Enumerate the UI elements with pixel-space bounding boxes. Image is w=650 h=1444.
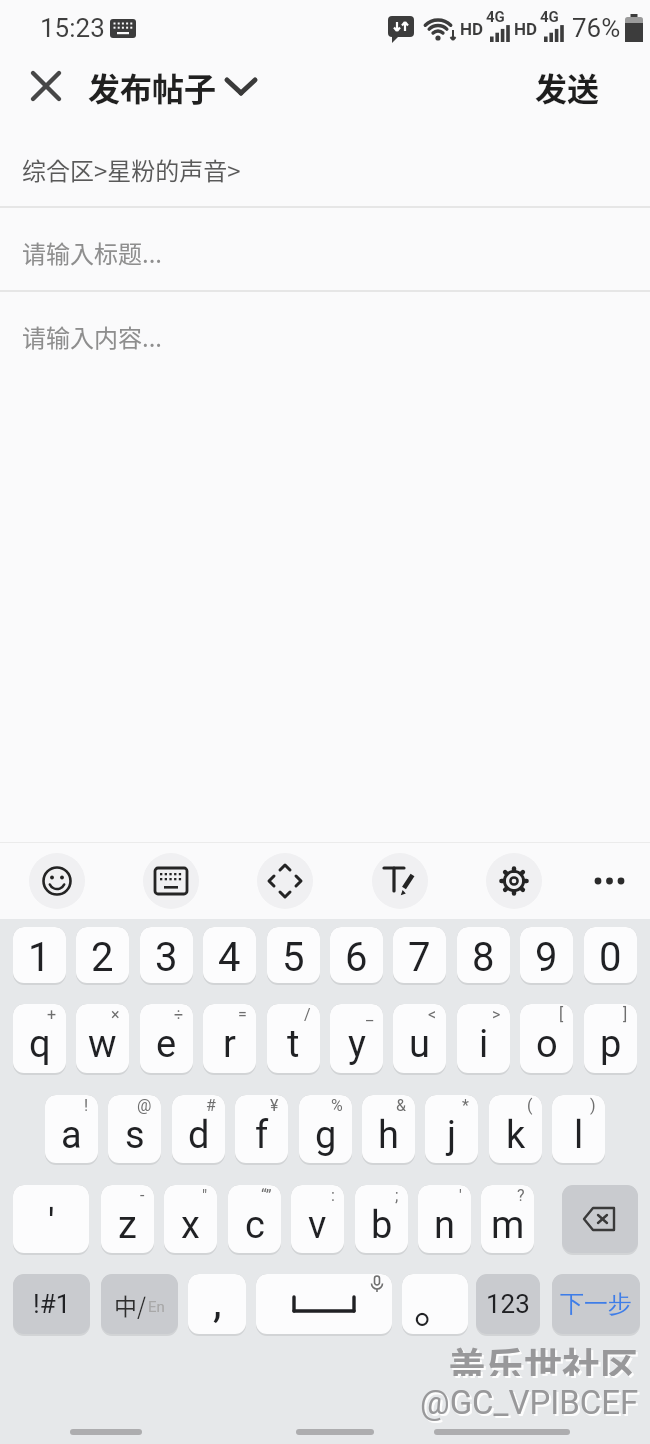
button[interactable]: 发送 [525,62,610,112]
button[interactable] [257,853,313,909]
staticText: HD [460,19,484,39]
button[interactable]: r [203,1004,256,1075]
staticText: n [434,1203,455,1248]
button[interactable]: f [235,1095,288,1165]
staticText: w [88,1022,117,1067]
button[interactable]: 7 [393,927,446,985]
button[interactable]: s [108,1095,161,1165]
staticText: 发送 [535,64,600,110]
button[interactable]: c [228,1185,281,1255]
staticText: : [331,1186,335,1205]
button[interactable]: 4 [203,927,256,985]
staticText: & [396,1096,406,1115]
staticText: ' [48,1201,55,1246]
button[interactable]: v [291,1185,344,1255]
button[interactable]: 3 [140,927,193,985]
button[interactable]: n [418,1185,471,1255]
button[interactable]: 请输入标题... [0,222,650,282]
button[interactable]: !#1 [13,1274,90,1336]
button[interactable]: a [45,1095,98,1165]
staticText: b [371,1203,393,1248]
button[interactable]: j [425,1095,478,1165]
button[interactable]: 8 [457,927,510,985]
staticText: p [600,1022,622,1067]
button[interactable]: 123 [476,1274,540,1336]
button[interactable]: q [13,1004,66,1075]
button[interactable]: e [140,1004,193,1075]
staticText: ? [517,1186,525,1205]
button[interactable]: w [76,1004,129,1075]
button[interactable]: m [481,1185,534,1255]
staticText: 盖乐世社区 [448,1336,639,1376]
button[interactable]: g [299,1095,352,1165]
button[interactable]: 1 [13,927,66,985]
button[interactable] [143,853,199,909]
staticText: !#1 [33,1289,71,1319]
button[interactable]: 9 [520,927,573,985]
staticText: 4G [540,8,559,26]
button[interactable] [26,66,66,106]
button[interactable] [256,1274,392,1336]
button[interactable]: 。 [402,1274,468,1336]
staticText: 7 [408,934,431,981]
button[interactable]: p [584,1004,637,1075]
button[interactable]: 中/ [101,1274,178,1336]
staticText: 4 [218,934,241,981]
staticText: 0 [599,934,622,981]
staticText: ÷ [174,1005,184,1024]
button[interactable]: ' [13,1185,89,1255]
button[interactable] [562,1185,638,1255]
button[interactable]: b [355,1185,408,1255]
staticText: “” [261,1186,272,1205]
staticText: @ [137,1096,152,1115]
button[interactable]: 综合区>星粉的声音> [0,140,650,198]
button[interactable]: 发布帖子 [88,62,258,112]
staticText: z [118,1203,137,1248]
button[interactable]: 5 [267,927,320,985]
button[interactable]: x [164,1185,217,1255]
button[interactable]: 6 [330,927,383,985]
staticText: + [47,1005,57,1024]
staticText: y [348,1022,366,1067]
staticText: @GC_VPIBCEF [420,1383,639,1422]
button[interactable]: o [520,1004,573,1075]
button[interactable] [486,853,542,909]
staticText: _ [366,1005,374,1024]
staticText: - [140,1186,145,1205]
staticText: j [447,1113,457,1158]
button[interactable]: h [362,1095,415,1165]
staticText: @GC_VPIBCEF [422,1385,641,1424]
button[interactable] [29,853,85,909]
staticText: v [308,1203,327,1248]
staticText: ! [84,1096,89,1115]
button[interactable]: 请输入内容... [0,306,650,366]
staticText: 3 [155,934,178,981]
staticText: 下一步 [560,1289,632,1319]
button[interactable]: l [552,1095,605,1165]
button[interactable]: d [172,1095,225,1165]
staticText: / [304,1005,311,1024]
staticText: HD [514,19,538,39]
staticText: 8 [472,934,495,981]
staticText: = [238,1005,247,1024]
button[interactable]: k [489,1095,542,1165]
staticText: x [181,1203,200,1248]
button[interactable]: u [393,1004,446,1075]
button[interactable]: 2 [76,927,129,985]
staticText: < [428,1005,437,1024]
staticText: l [574,1113,584,1158]
button[interactable]: 0 [584,927,637,985]
button[interactable]: , [188,1274,246,1336]
staticText: 2 [91,934,114,981]
staticText: En [148,1298,165,1316]
button[interactable]: 下一步 [552,1274,640,1336]
staticText: i [479,1022,489,1067]
staticText: ' [459,1186,462,1205]
staticText: * [462,1096,469,1115]
button[interactable]: t [267,1004,320,1075]
button[interactable]: y [330,1004,383,1075]
button[interactable]: z [101,1185,154,1255]
button[interactable] [372,853,428,909]
button[interactable] [582,853,638,909]
button[interactable]: i [457,1004,510,1075]
